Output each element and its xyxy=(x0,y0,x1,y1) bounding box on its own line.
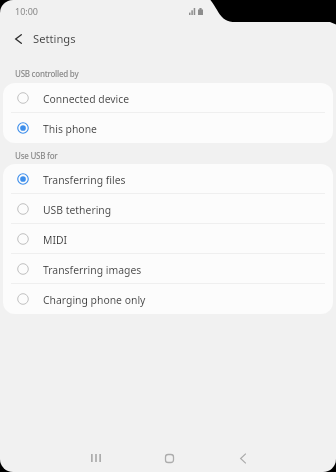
staticText: MIDI xyxy=(43,233,68,247)
staticText: Settings xyxy=(33,31,76,46)
button[interactable]: Connected device xyxy=(3,83,333,113)
button[interactable]: USB tethering xyxy=(3,194,333,224)
button[interactable]: Home xyxy=(148,444,191,472)
staticText: This phone xyxy=(43,122,97,136)
staticText: Use USB for xyxy=(15,150,58,161)
button[interactable]: MIDI xyxy=(3,224,333,254)
button[interactable]: Transferring images xyxy=(3,254,333,284)
staticText: Transferring images xyxy=(43,263,142,277)
staticText: USB controlled by xyxy=(15,68,79,79)
button[interactable]: Charging phone only xyxy=(3,284,333,314)
staticText: 10:00 xyxy=(15,5,39,17)
staticText: Transferring files xyxy=(43,173,126,187)
button[interactable]: Back xyxy=(221,444,264,472)
button[interactable]: This phone xyxy=(3,113,333,143)
staticText: USB tethering xyxy=(43,203,112,217)
button[interactable]: Transferring files xyxy=(3,164,333,194)
staticText: Charging phone only xyxy=(43,293,146,307)
button[interactable]: Recent apps xyxy=(74,444,117,472)
staticText: Connected device xyxy=(43,92,130,106)
button[interactable]: Navigate up xyxy=(6,27,30,51)
